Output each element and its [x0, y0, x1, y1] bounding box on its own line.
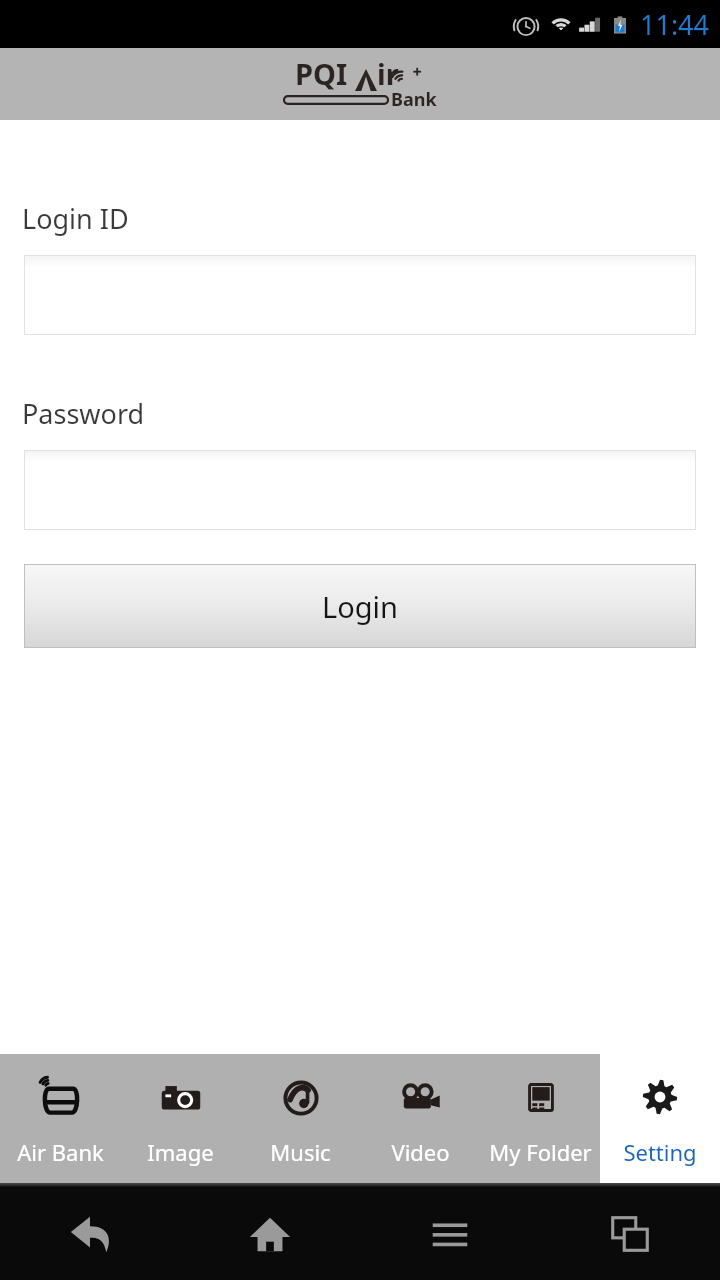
staticText: Setting — [623, 1137, 697, 1167]
staticText: PQI — [295, 54, 348, 93]
button[interactable]: My Folder — [480, 1054, 600, 1183]
staticText: Password — [22, 395, 145, 432]
button[interactable]: Music — [240, 1054, 360, 1183]
button[interactable]: Back — [0, 1187, 180, 1280]
staticText: Air Bank — [17, 1137, 104, 1167]
staticText: ir — [377, 54, 399, 93]
staticText: Video — [391, 1137, 450, 1167]
staticText: 11:44 — [640, 6, 710, 43]
staticText: Login — [322, 587, 398, 626]
button[interactable]: Setting — [600, 1054, 720, 1183]
button[interactable] — [24, 255, 696, 335]
button[interactable]: Video — [360, 1054, 480, 1183]
staticText: Bank — [391, 87, 437, 112]
button[interactable]: Recent apps — [540, 1187, 720, 1280]
staticText: My Folder — [489, 1137, 592, 1167]
staticText: Image — [147, 1137, 214, 1167]
button[interactable]: Image — [120, 1054, 240, 1183]
button[interactable]: Air Bank — [0, 1054, 120, 1183]
button[interactable]: Menu — [360, 1187, 540, 1280]
staticText: Music — [270, 1137, 331, 1167]
button[interactable]: Home — [180, 1187, 360, 1280]
button[interactable]: Login — [24, 564, 696, 648]
staticText: Login ID — [22, 200, 129, 237]
button[interactable] — [24, 450, 696, 530]
